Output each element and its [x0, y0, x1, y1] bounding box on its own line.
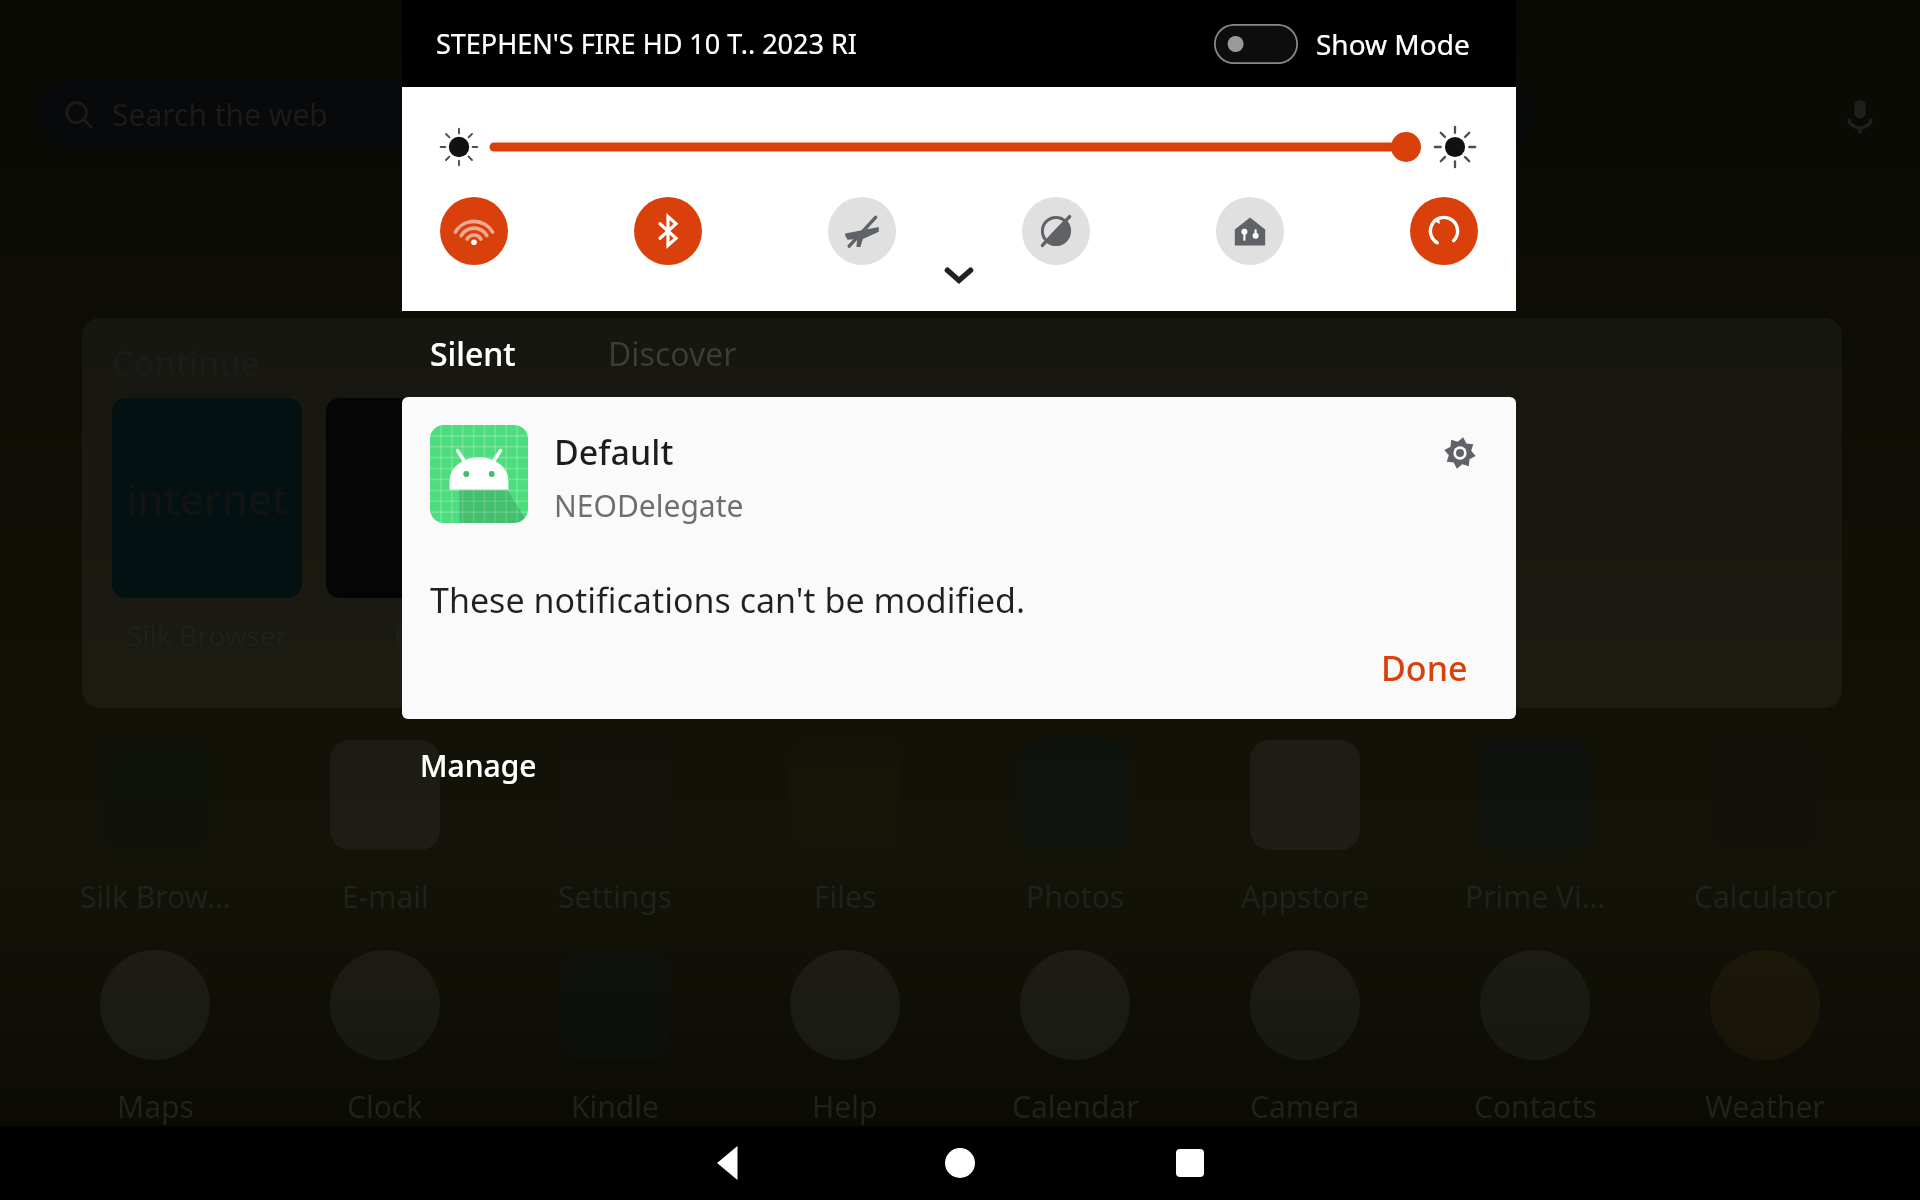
staticText: These notifications can't be modified.	[430, 577, 1026, 623]
staticText: Camera	[1250, 1086, 1360, 1127]
staticText: Done	[1381, 645, 1468, 691]
button[interactable]: Clock	[290, 950, 480, 1127]
staticText: Settings	[558, 876, 673, 917]
button[interactable]: Wi-Fi	[440, 197, 508, 265]
staticText: Appstore	[1241, 876, 1370, 917]
button[interactable]: Discover	[608, 332, 737, 376]
button[interactable]: Settings	[520, 740, 710, 917]
button[interactable]: Help	[750, 950, 940, 1127]
button[interactable]: Voice search	[1836, 92, 1884, 140]
button[interactable]: Notification settings	[1432, 425, 1488, 481]
staticText: Silent	[430, 332, 516, 376]
button[interactable]: Smart home	[1216, 197, 1284, 265]
button[interactable]: Done	[1355, 631, 1494, 705]
staticText: BBC	[394, 616, 449, 654]
button[interactable]: Weather	[1670, 950, 1860, 1127]
button[interactable]	[494, 127, 1420, 167]
staticText: Contacts	[1474, 1086, 1597, 1127]
button[interactable]: Appstore	[1210, 740, 1400, 917]
staticText: Manage	[420, 745, 537, 786]
staticText: Show Mode	[1316, 25, 1470, 63]
button[interactable]: Bluetooth	[634, 197, 702, 265]
button[interactable]	[754, 398, 944, 598]
staticText: Weather	[1705, 1086, 1825, 1127]
button[interactable]: Search the web	[36, 80, 1536, 148]
staticText: Files	[814, 876, 877, 917]
button[interactable]	[326, 398, 516, 598]
staticText: Kindle	[571, 1086, 659, 1127]
button[interactable]: Back	[685, 1126, 775, 1200]
staticText: Maps	[117, 1086, 194, 1127]
staticText: Silk Browser	[127, 616, 288, 654]
staticText: Search the web	[112, 94, 328, 135]
button[interactable]: Recents	[1145, 1126, 1235, 1200]
staticText: Clock	[347, 1086, 423, 1127]
staticText: Calendar	[1012, 1086, 1139, 1127]
staticText: Discover	[608, 332, 737, 376]
button[interactable]: Rotate screen	[1410, 197, 1478, 265]
button[interactable]: Manage	[420, 745, 537, 786]
staticText: Photos	[1026, 876, 1125, 917]
button[interactable]	[540, 398, 730, 598]
staticText: Default	[554, 429, 674, 475]
button[interactable]: Airplane mode	[828, 197, 896, 265]
staticText: E-mail	[342, 876, 429, 917]
button[interactable]: Calendar	[980, 950, 1170, 1127]
button[interactable]: Home	[915, 1126, 1005, 1200]
button[interactable]: Silent	[430, 332, 516, 376]
button[interactable]: Prime Vi…	[1440, 740, 1630, 917]
staticText: NEODelegate	[554, 485, 744, 526]
staticText: Silk Brow…	[80, 876, 231, 917]
staticText: Prime Vi…	[1465, 876, 1606, 917]
button[interactable]: Camera	[1210, 950, 1400, 1127]
staticText: STEPHEN'S FIRE HD 10 T.. 2023 RI	[436, 25, 857, 62]
button[interactable]: Do not disturb	[1022, 197, 1090, 265]
staticText: internet	[126, 470, 289, 527]
button[interactable]: internet	[112, 398, 302, 598]
button[interactable]	[968, 398, 1158, 598]
button[interactable]: Contacts	[1440, 950, 1630, 1127]
button[interactable]: Photos	[980, 740, 1170, 917]
button[interactable]: Show Mode	[1214, 24, 1470, 64]
button[interactable]: E-mail	[290, 740, 480, 917]
staticText: Help	[812, 1086, 878, 1127]
staticText: Calculator	[1694, 876, 1837, 917]
button[interactable]: Expand	[929, 245, 989, 305]
button[interactable]: Kindle	[520, 950, 710, 1127]
button[interactable]: Maps	[60, 950, 250, 1127]
